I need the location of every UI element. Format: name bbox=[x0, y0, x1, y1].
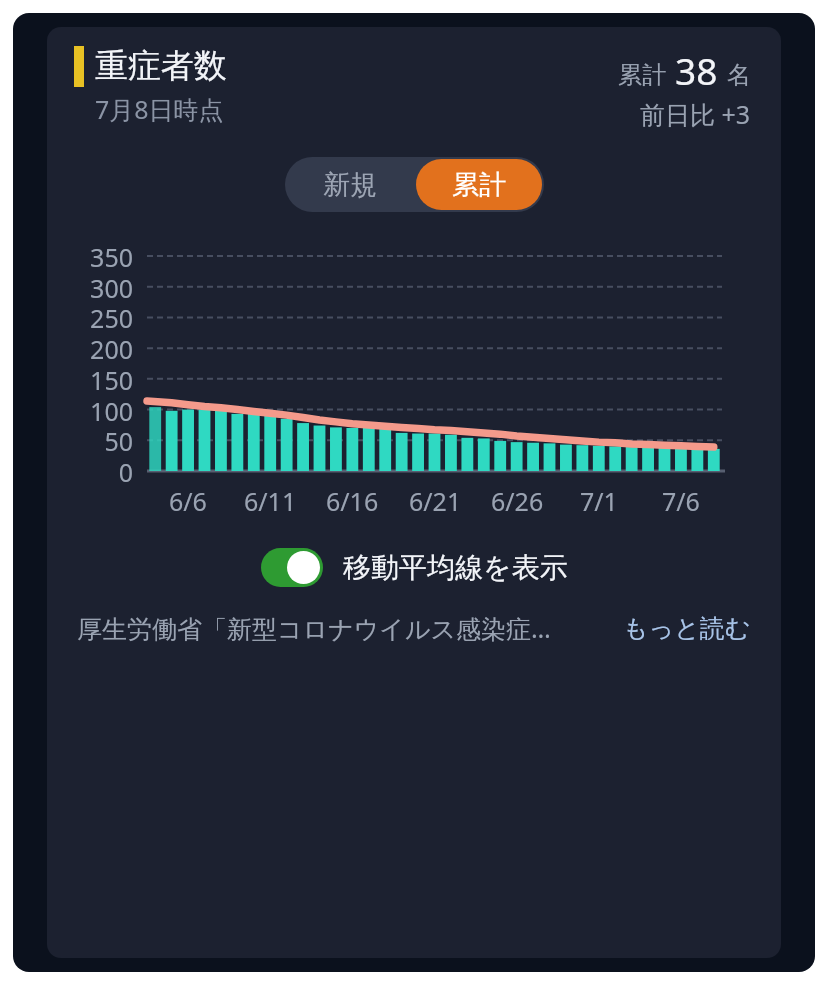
staticText: 38 bbox=[675, 45, 718, 95]
button[interactable]: 移動平均線を表示 スイッチ オン bbox=[261, 548, 568, 587]
staticText: 100 bbox=[90, 394, 133, 428]
staticText: 300 bbox=[90, 271, 133, 305]
staticText: 累計 bbox=[452, 168, 506, 202]
staticText: 6/21 bbox=[409, 484, 462, 518]
staticText: 6/16 bbox=[326, 484, 379, 518]
staticText: 名 bbox=[727, 60, 751, 90]
staticText: 7月8日時点 bbox=[95, 92, 224, 126]
staticText: 6/11 bbox=[244, 484, 297, 518]
staticText: もっと読む bbox=[623, 613, 751, 644]
staticText: 6/6 bbox=[169, 484, 207, 518]
staticText: 重症者数 bbox=[95, 45, 227, 87]
other: 移動平均線を表示 スイッチ オン bbox=[261, 548, 323, 587]
staticText: 累計 bbox=[618, 60, 666, 90]
staticText: 新規 bbox=[323, 168, 377, 202]
button[interactable]: 新規 bbox=[285, 157, 414, 212]
staticText: 0 bbox=[118, 455, 133, 489]
staticText: 7/6 bbox=[662, 484, 700, 518]
staticText: 150 bbox=[90, 363, 133, 397]
staticText: 前日比 +3 bbox=[640, 97, 751, 131]
button[interactable]: もっと読む bbox=[623, 613, 751, 644]
staticText: 厚生労働省「新型コロナウイルス感染症… bbox=[77, 611, 611, 645]
staticText: 250 bbox=[90, 301, 133, 335]
staticText: 200 bbox=[90, 332, 133, 366]
staticText: 7/1 bbox=[580, 484, 618, 518]
staticText: 50 bbox=[104, 424, 133, 458]
button[interactable]: 累計 bbox=[416, 159, 542, 210]
staticText: 350 bbox=[90, 240, 133, 274]
staticText: 6/26 bbox=[491, 484, 544, 518]
staticText: 移動平均線を表示 bbox=[343, 550, 568, 585]
